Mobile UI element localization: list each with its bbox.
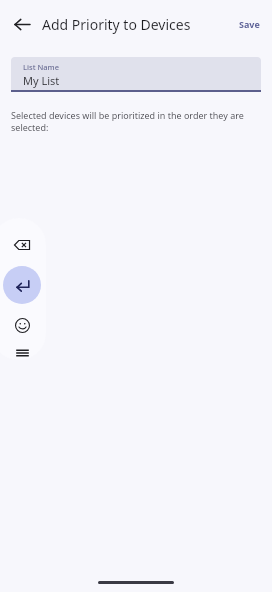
staticText: Save	[239, 18, 260, 30]
button[interactable]: Enter	[3, 266, 41, 304]
button[interactable]: Save	[235, 12, 264, 36]
button[interactable]: Back	[4, 6, 40, 42]
button[interactable]: More options	[3, 346, 41, 360]
staticText: My List	[23, 73, 60, 88]
button[interactable]: Emoji	[3, 306, 41, 344]
staticText: Add Priority to Devices	[42, 15, 235, 34]
button[interactable]: Backspace	[3, 226, 41, 264]
button[interactable]: List Name	[11, 57, 261, 92]
staticText: Selected devices will be prioritized in …	[11, 109, 261, 134]
staticText: List Name	[23, 62, 60, 72]
